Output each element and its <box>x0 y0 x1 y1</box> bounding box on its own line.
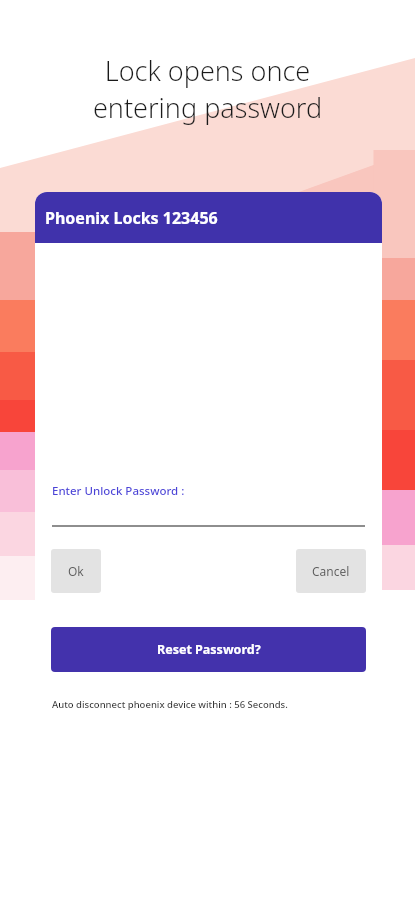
button[interactable]: Phoenix Locks 123456 <box>35 192 382 243</box>
staticText: Cancel <box>312 563 350 579</box>
staticText: Phoenix Locks 123456 <box>45 207 218 229</box>
staticText: Lock opens once entering password <box>0 52 415 126</box>
staticText: Enter Unlock Password : <box>52 483 185 499</box>
staticText: Reset Password? <box>157 641 261 658</box>
staticText: Auto disconnect phoenix device within : … <box>52 698 288 711</box>
button[interactable]: Cancel <box>296 549 366 593</box>
button[interactable]: Reset Password? <box>51 627 366 672</box>
button[interactable]: Ok <box>51 549 101 593</box>
staticText: Ok <box>68 563 84 579</box>
